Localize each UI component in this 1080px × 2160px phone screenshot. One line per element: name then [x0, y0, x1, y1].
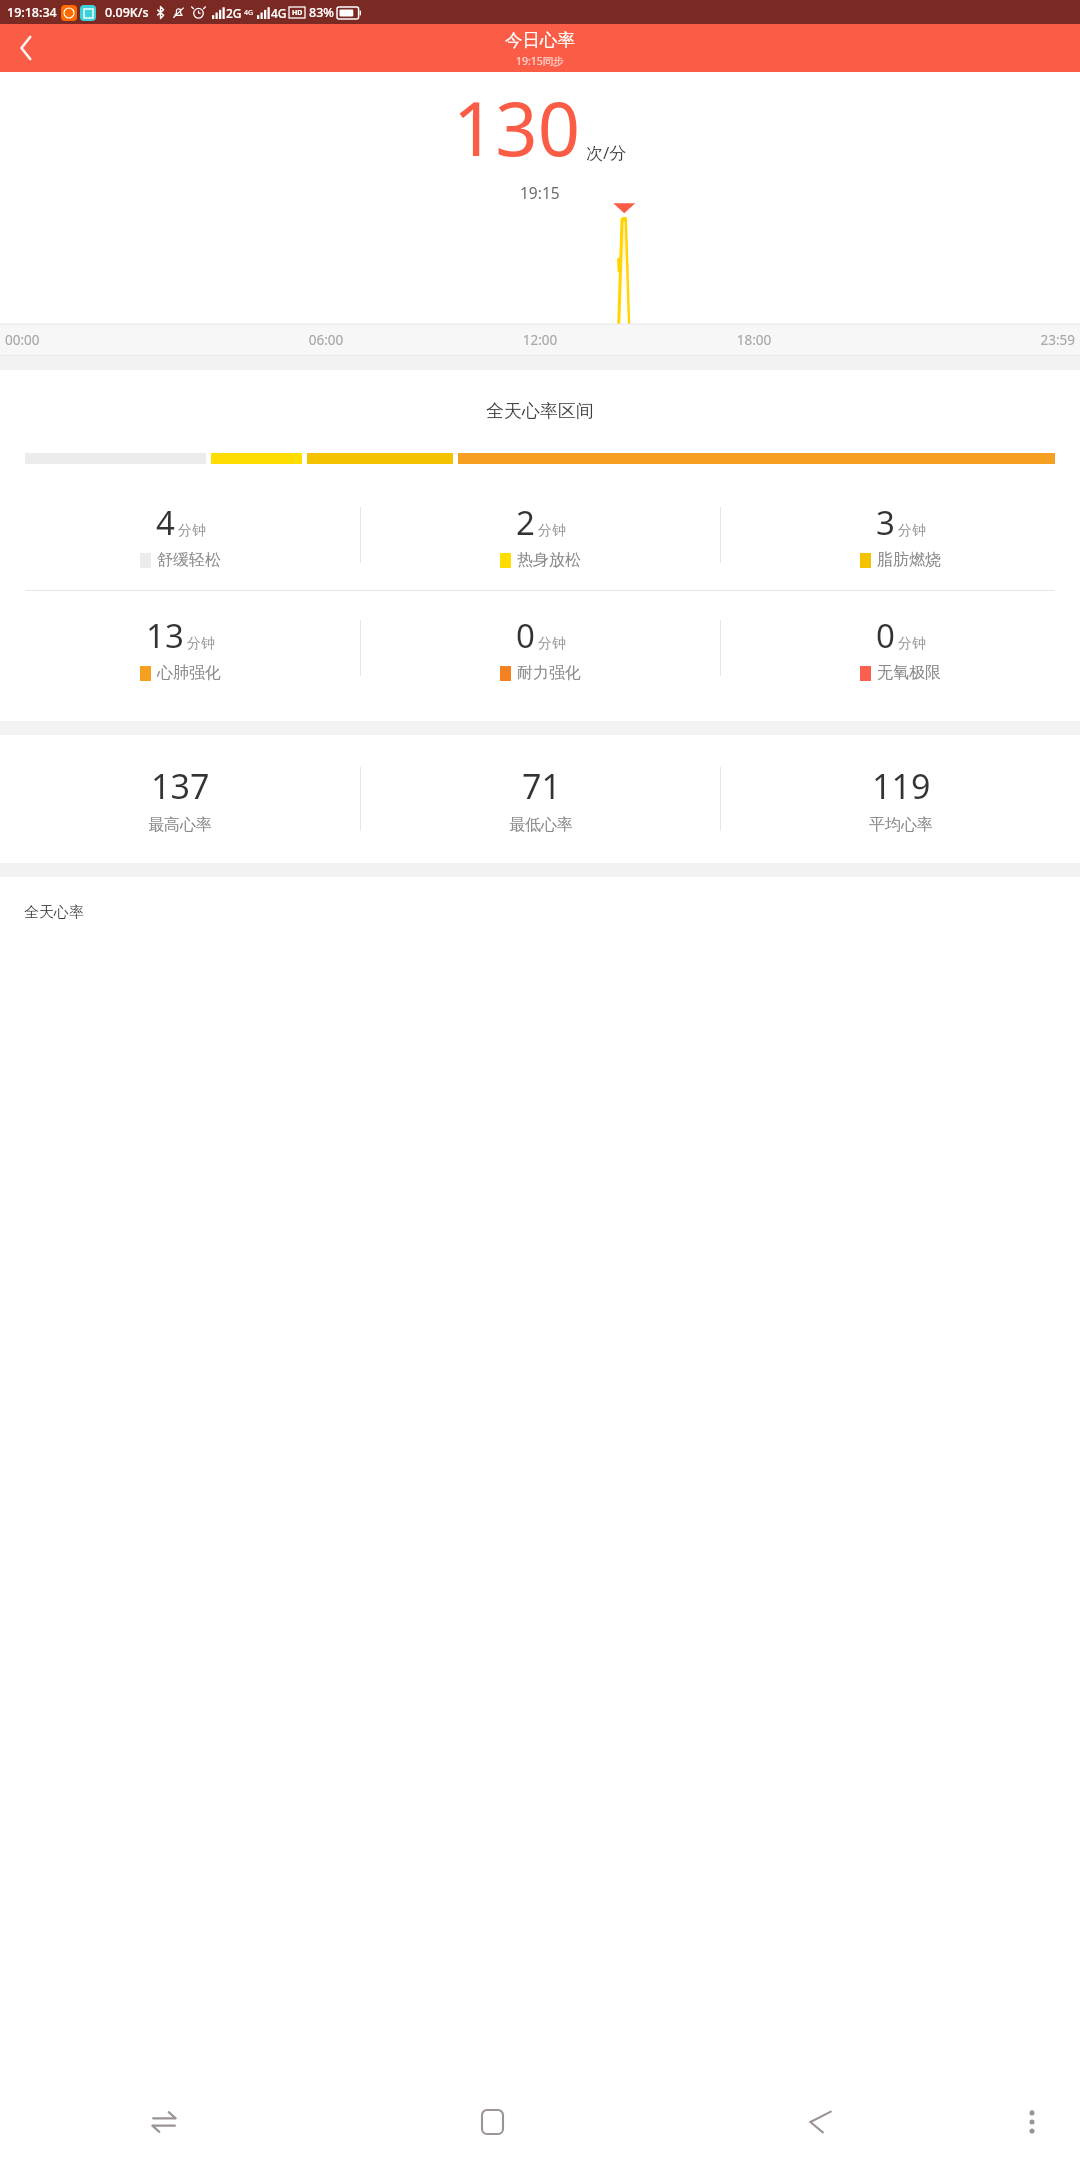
staticText: 23:59 — [861, 331, 1075, 349]
staticText: 热身放松 — [517, 550, 581, 570]
staticText: 脂肪燃烧 — [877, 550, 941, 570]
button[interactable]: 3 — [721, 498, 1080, 572]
staticText: 130 — [453, 77, 580, 178]
staticText: 19:15同步 — [516, 54, 564, 68]
staticText: 0 — [876, 613, 895, 658]
staticText: 心肺强化 — [157, 663, 221, 683]
button[interactable]: Home — [328, 2084, 656, 2160]
button[interactable]: 2 — [361, 498, 720, 572]
staticText: 分钟 — [538, 522, 566, 540]
button[interactable]: Switch — [0, 2084, 328, 2160]
staticText: 分钟 — [187, 635, 215, 653]
staticText: 平均心率 — [869, 815, 933, 835]
button[interactable]: Back — [0, 24, 52, 72]
staticText: 今日心率 — [505, 29, 575, 51]
staticText: 分钟 — [538, 635, 566, 653]
staticText: 83% — [309, 4, 334, 21]
button[interactable]: More options — [984, 2084, 1080, 2160]
staticText: 4G — [271, 5, 287, 21]
staticText: 2 — [516, 500, 535, 545]
button[interactable]: 0 — [721, 611, 1080, 685]
staticText: 119 — [872, 763, 931, 809]
button[interactable]: 13 — [0, 611, 360, 685]
staticText: 分钟 — [178, 522, 206, 540]
staticText: 4 — [156, 500, 175, 545]
staticText: 19:15 — [520, 182, 560, 203]
staticText: 全天心率 — [24, 903, 84, 922]
staticText: 00:00 — [5, 331, 219, 349]
staticText: 19:18:34 — [7, 4, 57, 21]
staticText: 舒缓轻松 — [157, 550, 221, 570]
button[interactable]: 4 — [0, 498, 360, 572]
staticText: 71 — [522, 763, 561, 809]
staticText: 3 — [876, 500, 895, 545]
staticText: 137 — [151, 763, 210, 809]
staticText: 4G — [244, 8, 254, 18]
button[interactable]: 71 — [361, 735, 720, 863]
staticText: 全天心率区间 — [0, 400, 1080, 423]
button[interactable]: Back — [656, 2084, 984, 2160]
staticText: 分钟 — [898, 522, 926, 540]
staticText: 0 — [516, 613, 535, 658]
staticText: HD — [292, 8, 303, 18]
staticText: 06:00 — [219, 331, 433, 349]
staticText: 13 — [146, 613, 184, 658]
staticText: 最低心率 — [509, 815, 573, 835]
staticText: 12:00 — [433, 331, 647, 349]
button[interactable]: 0 — [361, 611, 720, 685]
button[interactable]: 119 — [721, 735, 1080, 863]
staticText: 无氧极限 — [877, 663, 941, 683]
button[interactable]: 137 — [0, 735, 360, 863]
staticText: 耐力强化 — [517, 663, 581, 683]
staticText: 最高心率 — [148, 815, 212, 835]
staticText: 18:00 — [647, 331, 861, 349]
staticText: 次/分 — [586, 141, 627, 164]
staticText: 分钟 — [898, 635, 926, 653]
staticText: 2G — [226, 5, 242, 21]
staticText: 0.09K/s — [105, 4, 149, 21]
